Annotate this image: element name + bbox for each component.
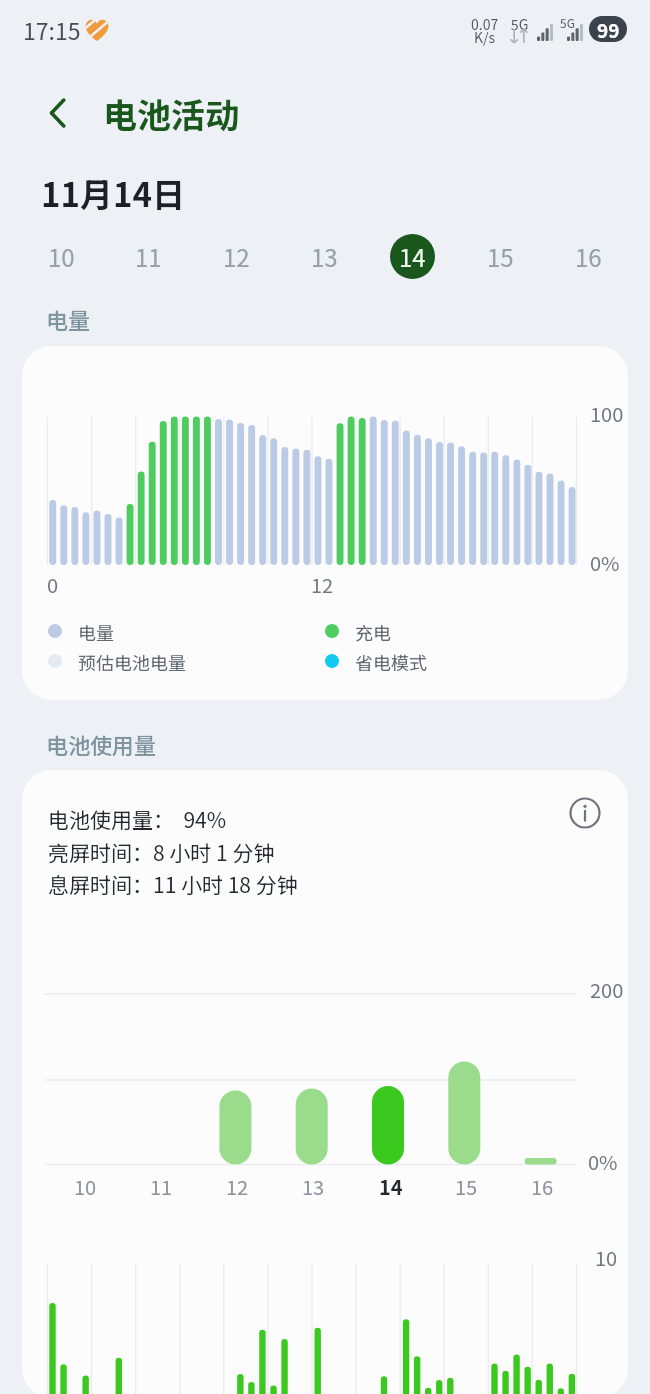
staticText: 100 (590, 399, 624, 428)
button[interactable]: Info (567, 795, 603, 831)
staticText: 13 (302, 1172, 325, 1201)
staticText: 11 (135, 239, 162, 274)
staticText: 预估电池电量 (78, 649, 186, 673)
staticText: 电量 (46, 303, 91, 335)
staticText: K/s (474, 27, 496, 47)
staticText: 电池使用量： 94% (48, 804, 227, 834)
button[interactable]: Battery 99 percent (589, 16, 627, 42)
staticText: 15 (455, 1172, 478, 1201)
button[interactable]: 充电 (325, 619, 391, 643)
staticText: 省电模式 (355, 649, 427, 673)
staticText: 充电 (355, 619, 391, 643)
staticText: 11月14日 (41, 169, 185, 217)
button[interactable]: 14 (368, 228, 456, 284)
staticText: 0% (588, 1147, 618, 1176)
button[interactable]: 预估电池电量 (48, 649, 186, 673)
staticText: 5G (560, 14, 575, 31)
button[interactable]: 16 (544, 228, 632, 284)
staticText: 14 (379, 1172, 403, 1201)
staticText: 12 (311, 570, 334, 599)
staticText: 0% (590, 548, 620, 577)
staticText: 10 (74, 1172, 97, 1201)
staticText: 12 (223, 239, 250, 274)
staticText: 13 (311, 239, 338, 274)
staticText: 15 (487, 239, 514, 274)
staticText: 14 (399, 239, 426, 274)
staticText: 0 (47, 570, 59, 599)
staticText: 电池活动 (103, 89, 239, 138)
staticText: 5G (511, 14, 529, 34)
staticText: 息屏时间：11 小时 18 分钟 (48, 869, 298, 899)
button[interactable]: 省电模式 (325, 649, 427, 673)
staticText: 10 (595, 1243, 618, 1272)
button[interactable]: 11 (105, 228, 192, 284)
button[interactable]: 13 (280, 228, 368, 284)
staticText: 16 (575, 239, 602, 274)
staticText: 电池使用量 (46, 728, 157, 760)
staticText: 0.07 (471, 14, 499, 34)
button[interactable]: 电量 (48, 619, 114, 643)
staticText: 12 (226, 1172, 249, 1201)
staticText: 16 (531, 1172, 554, 1201)
button[interactable]: Back (37, 92, 79, 134)
staticText: 200 (590, 975, 624, 1004)
button[interactable]: 10 (18, 228, 105, 284)
staticText: 99 (597, 16, 620, 42)
staticText: 10 (48, 239, 75, 274)
button[interactable]: 12 (192, 228, 280, 284)
staticText: 17:15 (23, 13, 81, 46)
button[interactable]: 15 (456, 228, 544, 284)
staticText: 电量 (78, 619, 114, 643)
staticText: 11 (150, 1172, 173, 1201)
staticText: 亮屏时间：8 小时 1 分钟 (48, 837, 275, 867)
